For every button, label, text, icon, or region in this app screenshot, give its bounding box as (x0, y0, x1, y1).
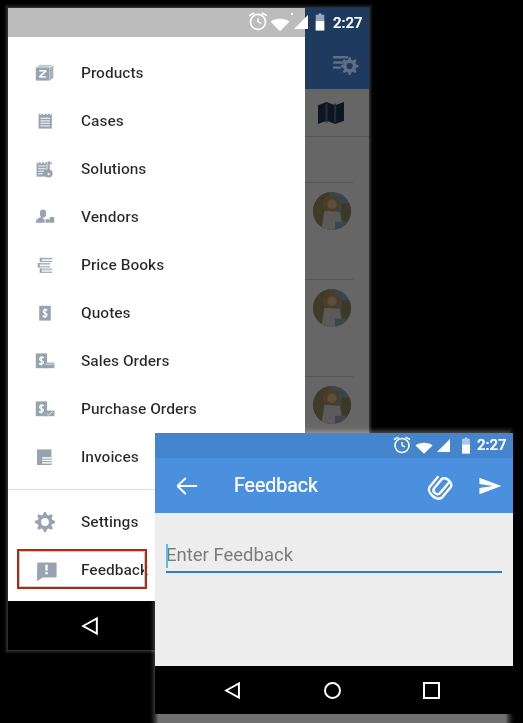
staticText: Cases (81, 112, 124, 130)
staticText: Invoices (81, 448, 139, 466)
button[interactable]: Products (8, 49, 305, 97)
staticText: 2:27 (477, 436, 507, 454)
button[interactable]: Quotes (8, 289, 305, 337)
button[interactable]: Filter settings (325, 43, 365, 83)
button[interactable]: Map (311, 93, 351, 133)
button[interactable]: Invoices (8, 433, 305, 481)
staticText: Sales Orders (81, 352, 170, 370)
staticText: Feedback (81, 561, 149, 579)
button[interactable]: Back (72, 608, 108, 644)
button[interactable]: Home (312, 670, 352, 710)
staticText: Price Books (81, 256, 165, 274)
staticText: Settings (81, 513, 139, 531)
button[interactable]: Settings (8, 498, 305, 546)
button[interactable]: Solutions (8, 145, 305, 193)
button[interactable]: Enter Feedback (166, 544, 294, 566)
staticText: Purchase Orders (81, 400, 197, 418)
button[interactable]: Back (165, 464, 209, 508)
staticText: Feedback (234, 474, 318, 497)
button[interactable]: Cases (8, 97, 305, 145)
staticText: Vendors (81, 208, 139, 226)
staticText: Quotes (81, 304, 131, 322)
button[interactable]: Sales Orders (8, 337, 305, 385)
button[interactable]: Price Books (8, 241, 305, 289)
button[interactable]: Feedback (8, 546, 305, 594)
button[interactable]: Recent apps (411, 670, 451, 710)
staticText: Products (81, 64, 144, 82)
button[interactable]: Back (212, 670, 252, 710)
button[interactable]: Send (468, 464, 512, 508)
button[interactable]: Vendors (8, 193, 305, 241)
staticText: Solutions (81, 160, 147, 178)
button[interactable]: Purchase Orders (8, 385, 305, 433)
staticText: 2:27 (333, 14, 363, 32)
button[interactable]: Attach file (419, 464, 463, 508)
